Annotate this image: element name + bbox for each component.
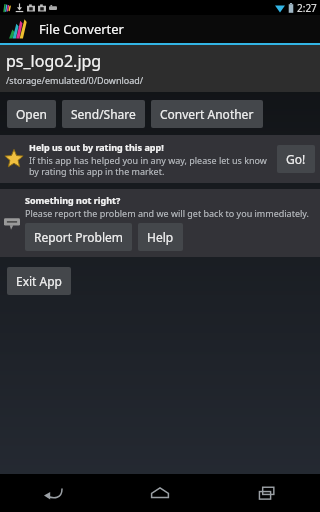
staticText: Something not right?	[25, 194, 121, 206]
staticText: Convert Another	[160, 106, 254, 122]
staticText: Help	[147, 229, 174, 245]
staticText: Send/Share	[71, 106, 136, 122]
button[interactable]: Home	[106, 474, 213, 512]
button[interactable]: Open	[7, 100, 56, 128]
staticText: Exit App	[16, 273, 62, 289]
staticText: Open	[16, 106, 47, 122]
staticText: Go!	[286, 151, 306, 167]
staticText: If this app has helped you in any way, p…	[29, 154, 272, 177]
button[interactable]: Back	[0, 474, 106, 512]
staticText: Help us out by rating this app!	[29, 141, 164, 153]
button[interactable]: Help	[138, 223, 183, 251]
staticText: 2:27	[297, 1, 317, 15]
button[interactable]: File Converter	[0, 15, 320, 43]
staticText: ps_logo2.jpg	[6, 50, 102, 72]
staticText: File Converter	[39, 20, 124, 38]
button[interactable]: Convert Another	[151, 100, 263, 128]
staticText: /storage/emulated/0/Download/	[6, 74, 144, 86]
button[interactable]: Go!	[277, 145, 315, 173]
button[interactable]: Report Problem	[25, 223, 132, 251]
staticText: Report Problem	[34, 229, 123, 245]
button[interactable]: Exit App	[7, 267, 71, 295]
button[interactable]: Recents	[213, 474, 320, 512]
other: Feedback	[4, 215, 20, 231]
staticText: Please report the problem and we will ge…	[25, 207, 309, 219]
button[interactable]: Send/Share	[62, 100, 145, 128]
